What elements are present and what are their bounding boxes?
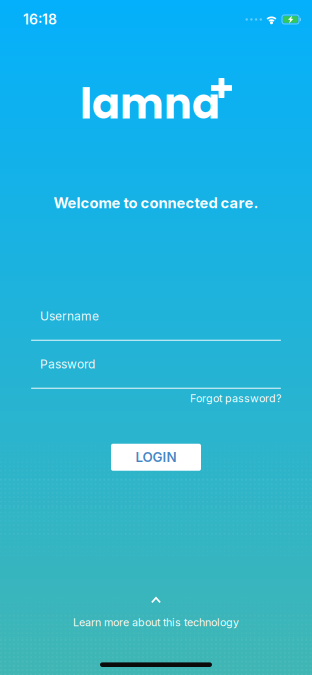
staticText: Username: [40, 309, 99, 323]
staticText: Forgot password?: [190, 392, 281, 405]
staticText: lamna: [80, 75, 220, 133]
staticText: Password: [40, 357, 95, 371]
button[interactable]: Learn more about this technology: [56, 596, 256, 628]
button[interactable]: Password: [31, 358, 281, 389]
staticText: LOGIN: [135, 449, 176, 465]
staticText: Learn more about this technology: [73, 616, 239, 629]
staticText: 16:18: [23, 11, 57, 28]
button[interactable]: LOGIN: [111, 444, 201, 471]
staticText: Welcome to connected care.: [53, 194, 258, 212]
button[interactable]: Forgot password?: [190, 392, 281, 405]
button[interactable]: Username: [31, 310, 281, 341]
